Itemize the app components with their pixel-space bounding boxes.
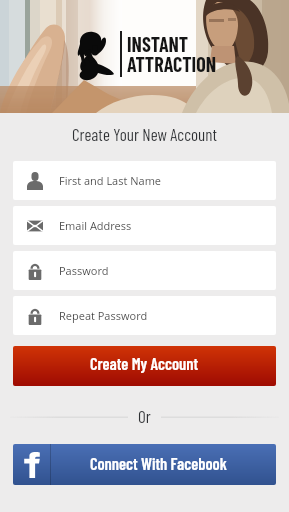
- staticText: Or: [138, 406, 151, 424]
- button[interactable]: First and Last Name: [13, 161, 276, 200]
- staticText: Repeat Password: [59, 308, 148, 323]
- staticText: INSTANT: [127, 32, 189, 56]
- button[interactable]: Email Address: [13, 206, 276, 245]
- button[interactable]: Connect With Facebook: [13, 444, 276, 485]
- button[interactable]: Password: [13, 251, 276, 290]
- staticText: Create Your New Account: [0, 124, 289, 144]
- staticText: Connect With Facebook: [90, 453, 227, 473]
- staticText: Password: [59, 263, 109, 278]
- button[interactable]: Create My Account: [13, 346, 276, 386]
- staticText: Create My Account: [90, 353, 199, 373]
- staticText: Email Address: [59, 218, 132, 233]
- button[interactable]: Repeat Password: [13, 296, 276, 335]
- staticText: ATTRACTION: [127, 52, 216, 76]
- staticText: First and Last Name: [59, 173, 162, 188]
